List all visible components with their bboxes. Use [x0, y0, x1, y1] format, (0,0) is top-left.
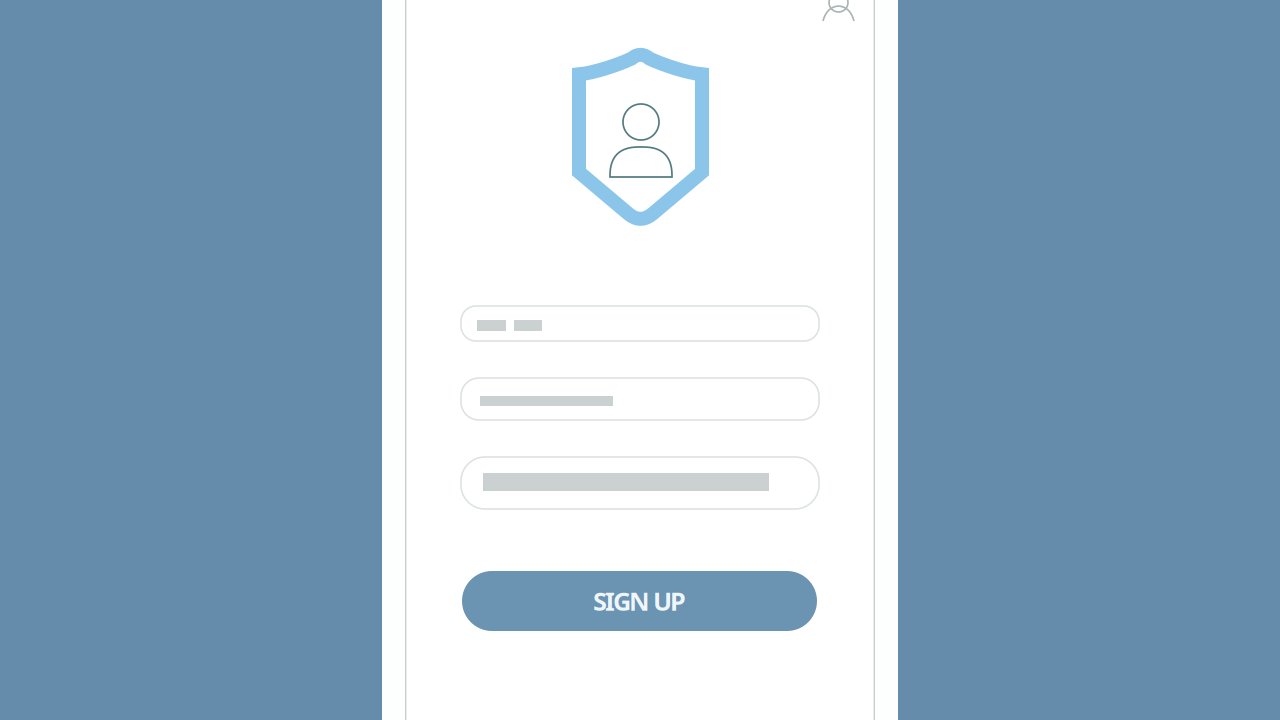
- staticText: SIGN UP: [593, 584, 686, 618]
- button[interactable]: [461, 457, 819, 509]
- button[interactable]: SIGN UP: [462, 571, 817, 631]
- button[interactable]: Account: [823, 0, 854, 23]
- button[interactable]: [461, 378, 819, 420]
- button[interactable]: [461, 306, 819, 341]
